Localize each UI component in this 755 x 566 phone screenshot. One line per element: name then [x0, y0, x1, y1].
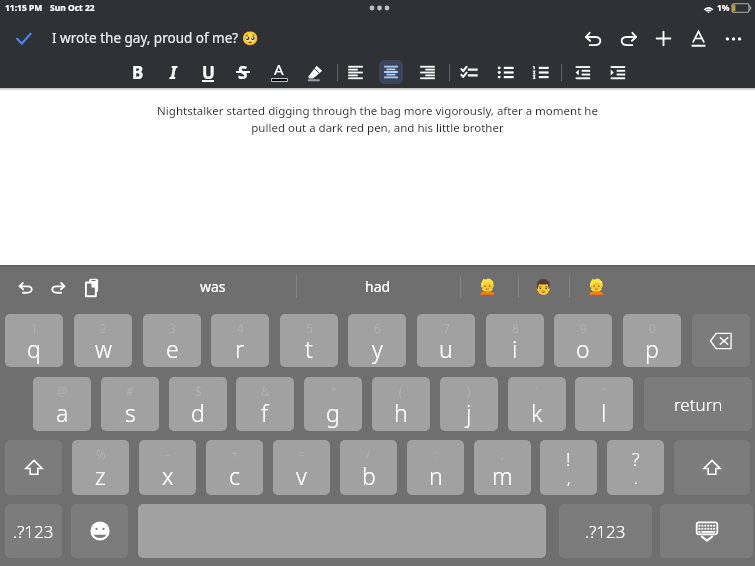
button[interactable]: & — [236, 377, 294, 431]
button[interactable]: Align left — [339, 56, 371, 88]
button[interactable]: Increase indent — [601, 56, 633, 88]
staticText: 9 — [580, 320, 587, 336]
staticText: i — [512, 333, 518, 364]
staticText: e — [166, 333, 179, 364]
button[interactable]: Text colour — [263, 56, 295, 88]
button[interactable]: More options — [716, 20, 751, 56]
button[interactable]: Shift — [674, 440, 750, 495]
button[interactable]: - — [139, 440, 196, 495]
button[interactable]: Clipboard — [78, 273, 106, 301]
button[interactable]: had — [296, 265, 460, 308]
staticText: d — [191, 397, 205, 428]
button[interactable]: + — [206, 440, 263, 495]
staticText: 3 — [169, 320, 176, 336]
button[interactable]: @ — [33, 377, 91, 431]
button[interactable]: 5 — [280, 314, 338, 367]
button[interactable]: Text format — [681, 20, 716, 56]
staticText: , — [567, 468, 571, 488]
staticText: % — [96, 446, 106, 462]
staticText: 1% — [717, 2, 730, 14]
button[interactable]: Bulleted list — [489, 56, 521, 88]
button[interactable]: ' — [508, 377, 566, 431]
button[interactable]: 4 — [211, 314, 269, 367]
button[interactable]: Shift — [5, 440, 62, 495]
button[interactable]: 👱 — [569, 265, 623, 308]
staticText: o — [576, 333, 590, 364]
button[interactable]: Hide keyboard — [660, 504, 753, 558]
button[interactable]: Align center — [379, 60, 403, 84]
staticText: 4 — [237, 320, 244, 336]
button[interactable]: ( — [372, 377, 430, 431]
staticText: Nightstalker started digging through the… — [150, 103, 605, 135]
button[interactable]: Align right — [411, 56, 443, 88]
staticText: 1 — [31, 320, 38, 336]
button[interactable]: was — [130, 265, 296, 308]
button[interactable]: / — [340, 440, 397, 495]
button[interactable]: ! — [540, 440, 597, 495]
button[interactable]: Underline — [192, 56, 224, 88]
button[interactable]: # — [101, 377, 159, 431]
staticText: b — [362, 460, 376, 491]
button[interactable]: $ — [169, 377, 227, 431]
button[interactable]: .?123 — [559, 504, 652, 558]
staticText: h — [394, 397, 408, 428]
button[interactable]: Redo — [611, 20, 646, 56]
button[interactable]: Emoji — [71, 504, 128, 558]
staticText: ? — [632, 447, 640, 472]
button[interactable]: Numbered list — [524, 56, 556, 88]
button[interactable]: 8 — [486, 314, 544, 367]
button[interactable]: " — [575, 377, 633, 431]
staticText: k — [531, 397, 543, 428]
button[interactable]: 9 — [554, 314, 612, 367]
staticText: 👱 — [478, 278, 497, 296]
staticText: l — [601, 397, 607, 428]
button[interactable]: ) — [440, 377, 498, 431]
button[interactable]: Done — [8, 23, 38, 53]
button[interactable]: 👱 — [460, 265, 514, 308]
button[interactable]: * — [304, 377, 362, 431]
staticText: + — [231, 446, 238, 462]
button[interactable]: Strikethrough — [227, 56, 259, 88]
button[interactable]: Bold — [122, 56, 154, 88]
staticText: x — [162, 460, 174, 491]
staticText: y — [372, 333, 383, 364]
button[interactable]: Add — [646, 20, 681, 56]
staticText: 0 — [649, 320, 656, 336]
button[interactable]: 0 — [623, 314, 681, 367]
staticText: 👱 — [587, 278, 606, 296]
button[interactable]: 7 — [417, 314, 475, 367]
staticText: 6 — [374, 320, 381, 336]
button[interactable]: 1 — [5, 314, 63, 367]
staticText: I wrote the gay, proud of me? 🥺 — [52, 29, 259, 47]
button[interactable]: Redo — [44, 273, 72, 301]
button[interactable]: Italic — [157, 56, 189, 88]
button[interactable]: .?123 — [5, 504, 62, 558]
button[interactable]: return — [644, 377, 752, 431]
button[interactable]: Decrease indent — [566, 56, 598, 88]
button[interactable]: = — [273, 440, 330, 495]
button[interactable]: 6 — [348, 314, 406, 367]
button[interactable]: Backspace — [692, 314, 750, 367]
button[interactable]: Undo — [12, 273, 40, 301]
button[interactable]: 👨 — [516, 265, 570, 308]
button[interactable]: Undo — [576, 20, 611, 56]
staticText: . — [634, 468, 638, 488]
staticText: was — [200, 277, 226, 296]
staticText: 👨 — [534, 278, 553, 296]
button[interactable]: : — [407, 440, 464, 495]
button[interactable]: % — [72, 440, 129, 495]
staticText: Sun Oct 22 — [50, 2, 95, 14]
staticText: z — [95, 460, 106, 491]
button[interactable]: Highlight — [298, 56, 330, 88]
button[interactable]: ? — [607, 440, 664, 495]
button[interactable]: 2 — [74, 314, 132, 367]
button[interactable]: 3 — [143, 314, 201, 367]
staticText: had — [365, 277, 391, 296]
button[interactable]: Checklist — [453, 56, 485, 88]
button[interactable]: ; — [474, 440, 531, 495]
